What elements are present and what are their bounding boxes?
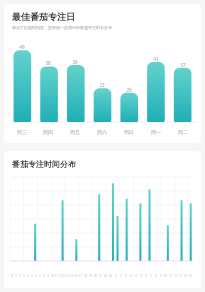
- staticText: 4: [27, 274, 29, 278]
- staticText: 39: [72, 59, 78, 65]
- staticText: 2: [19, 274, 21, 278]
- staticText: 14: [184, 274, 187, 278]
- staticText: 8: [43, 274, 45, 278]
- staticText: 15: [71, 274, 74, 278]
- staticText: 周五: [70, 129, 80, 135]
- staticText: 22: [104, 274, 107, 278]
- staticText: 周二: [178, 129, 188, 135]
- staticText: 1: [120, 274, 122, 278]
- staticText: 7: [39, 274, 41, 278]
- staticText: 11: [169, 274, 172, 278]
- staticText: 2: [125, 274, 127, 278]
- staticText: 9: [47, 274, 49, 278]
- staticText: 18: [84, 274, 87, 278]
- staticText: 11: [55, 274, 58, 278]
- staticText: 3: [130, 274, 132, 278]
- staticText: 展示了近期时间里，您每周一至周日的番茄专注时长分布: [12, 25, 112, 30]
- staticText: 7: [150, 274, 152, 278]
- staticText: 4: [135, 274, 137, 278]
- staticText: 周六: [97, 129, 107, 135]
- staticText: 23: [109, 274, 112, 278]
- staticText: 周四: [43, 129, 53, 135]
- staticText: 10: [51, 274, 54, 278]
- staticText: 5: [31, 274, 33, 278]
- staticText: 16: [75, 274, 78, 278]
- staticText: 38: [45, 60, 51, 66]
- staticText: 13: [63, 274, 66, 278]
- staticText: 3: [23, 274, 25, 278]
- staticText: 10: [164, 274, 167, 278]
- staticText: 20: [94, 274, 97, 278]
- staticText: 5: [140, 274, 142, 278]
- button[interactable]: 最佳番茄专注日: [4, 4, 201, 143]
- button[interactable]: 番茄专注时间分布: [4, 151, 201, 288]
- staticText: 周日: [124, 129, 134, 135]
- staticText: 12: [174, 274, 177, 278]
- staticText: 37: [180, 62, 186, 68]
- staticText: 9: [160, 274, 162, 278]
- staticText: 23: [99, 82, 105, 88]
- staticText: 13: [179, 274, 182, 278]
- staticText: 6: [35, 274, 37, 278]
- staticText: 41: [153, 56, 159, 62]
- staticText: 20: [126, 87, 132, 93]
- staticText: 17: [79, 274, 82, 278]
- staticText: 0: [11, 274, 13, 278]
- staticText: 14: [67, 274, 70, 278]
- staticText: 0: [115, 274, 117, 278]
- staticText: 番茄专注时间分布: [12, 159, 76, 169]
- staticText: 6: [145, 274, 147, 278]
- staticText: 最佳番茄专注日: [12, 11, 75, 22]
- staticText: 8: [155, 274, 157, 278]
- staticText: 1: [15, 274, 17, 278]
- staticText: 周三: [17, 129, 27, 135]
- staticText: 12: [59, 274, 62, 278]
- staticText: 15: [189, 274, 192, 278]
- staticText: 21: [99, 274, 102, 278]
- staticText: 19: [89, 274, 92, 278]
- staticText: 49: [19, 44, 25, 50]
- other: 番茄专注时间分布图表: [10, 175, 193, 281]
- staticText: 周一: [151, 129, 161, 135]
